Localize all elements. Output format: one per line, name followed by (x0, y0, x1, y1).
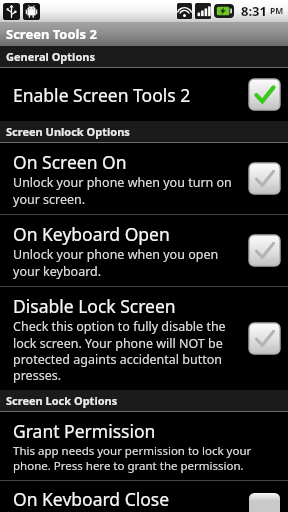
staticText: Unlock your phone when you open your key… (13, 246, 219, 279)
button[interactable]: On Keyboard Open (0, 215, 288, 286)
staticText: Grant Permission (13, 419, 156, 443)
staticText: Check this option to fully disable the l… (13, 318, 226, 383)
button[interactable]: Enable Screen Tools 2 (0, 68, 288, 121)
button[interactable]: Disable Lock Screen (0, 287, 288, 390)
staticText: On Keyboard Open (13, 222, 170, 246)
button[interactable]: Unchecked (249, 323, 280, 354)
button[interactable]: On Keyboard Close (0, 481, 288, 512)
button[interactable]: Checked (249, 79, 280, 110)
staticText: General Options (6, 49, 95, 64)
button[interactable]: Toggle On Keyboard Close (249, 493, 280, 501)
button[interactable]: Unchecked (249, 235, 280, 266)
staticText: Disable Lock Screen (13, 294, 176, 318)
staticText: Enable Screen Tools 2 (13, 83, 191, 107)
button[interactable]: Unchecked (249, 163, 280, 194)
staticText: Screen Unlock Options (6, 124, 130, 139)
staticText: This app needs your permission to lock y… (13, 443, 252, 473)
staticText: On Screen On (13, 150, 127, 174)
staticText: PM (270, 5, 284, 17)
staticText: 8:31 (241, 2, 267, 20)
staticText: On Keyboard Close (13, 487, 170, 506)
staticText: Unlock your phone when you turn on your … (13, 174, 232, 207)
button[interactable]: Grant Permission (0, 412, 288, 480)
staticText: Screen Lock Options (6, 393, 118, 408)
staticText: Screen Tools 2 (6, 25, 97, 43)
button[interactable]: On Screen On (0, 143, 288, 214)
